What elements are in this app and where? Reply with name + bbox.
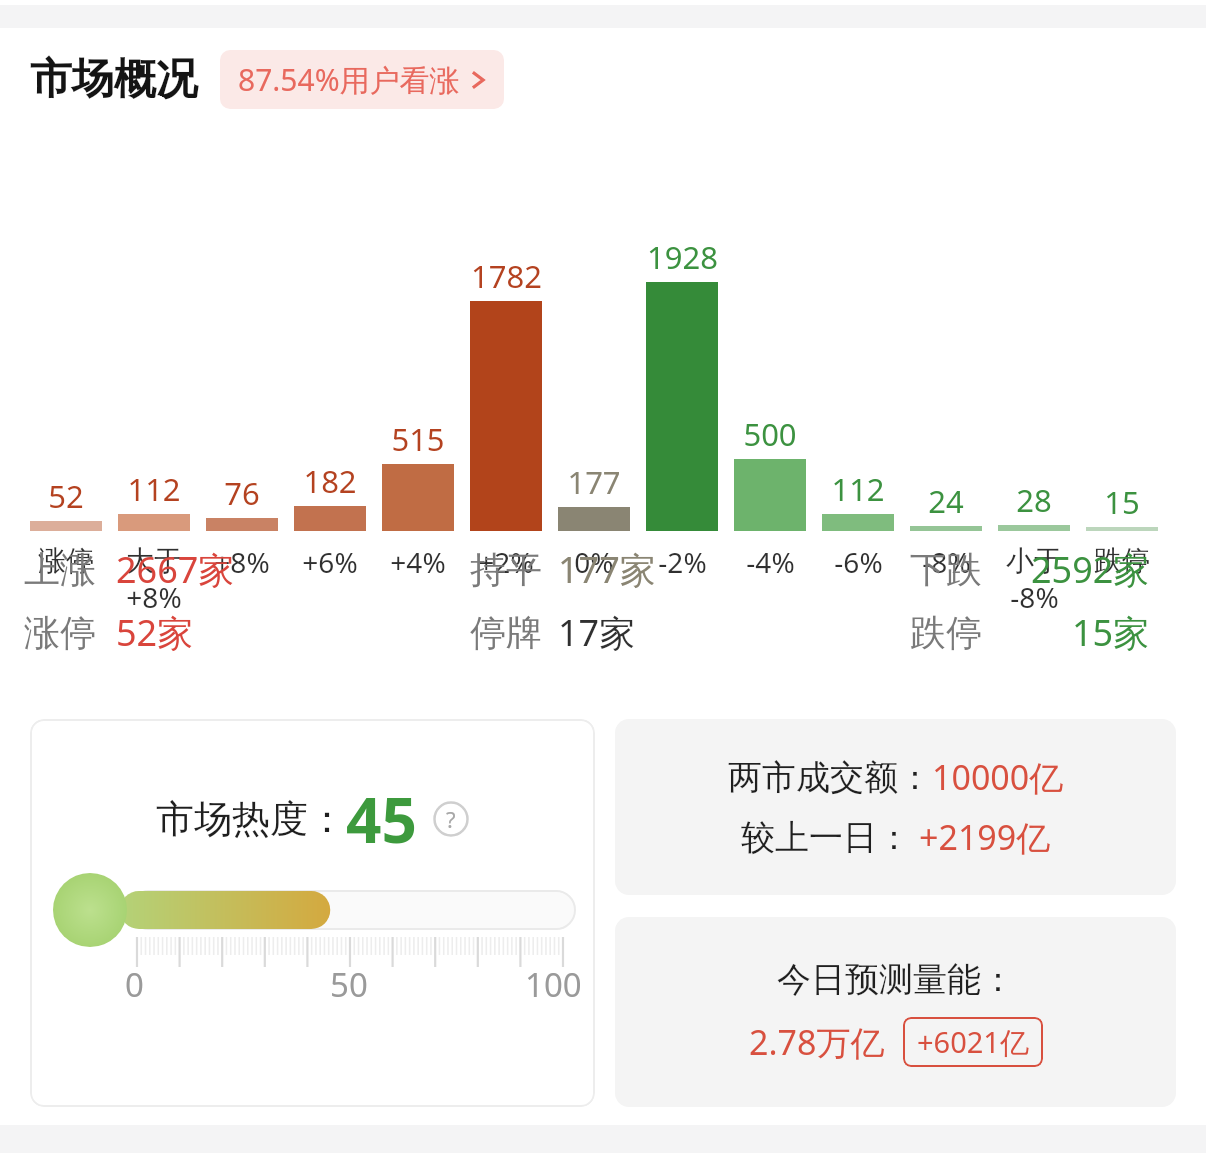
staticText: 0% (574, 543, 614, 581)
staticText: 10000亿 (932, 754, 1064, 800)
staticText: 52家 (116, 608, 194, 657)
staticText: 跌停 (1094, 543, 1150, 578)
staticText: 17家 (558, 608, 636, 657)
staticText: 大于 (126, 543, 182, 578)
staticText: -2% (658, 543, 707, 581)
staticText: +6% (302, 543, 358, 581)
staticText: -8% (922, 543, 971, 581)
button[interactable]: 两市成交额： (615, 719, 1176, 895)
staticText: +8% (126, 578, 182, 616)
staticText: +2199亿 (919, 814, 1051, 860)
staticText: 今日预测量能： (777, 958, 1015, 1001)
button[interactable]: 市场热度： (30, 719, 595, 1107)
staticText: 下跌 (910, 547, 982, 592)
staticText: 112 (127, 468, 181, 510)
staticText: 28 (1016, 479, 1052, 521)
staticText: 2592家 (1031, 545, 1150, 594)
staticText: +2% (478, 543, 534, 581)
staticText: 100 (525, 962, 582, 1007)
staticText: 市场概况 (30, 53, 198, 106)
staticText: 较上一日： (741, 816, 911, 859)
staticText: +8% (214, 543, 270, 581)
staticText: 0 (125, 962, 144, 1007)
staticText: 500 (743, 413, 797, 455)
staticText: 2667家 (116, 545, 235, 594)
staticText: -4% (746, 543, 795, 581)
staticText: 15家 (1072, 608, 1150, 657)
button[interactable]: 今日预测量能： (615, 917, 1176, 1107)
staticText: 15 (1104, 481, 1140, 523)
staticText: 持平 (470, 547, 542, 592)
staticText: 182 (303, 460, 357, 502)
staticText: 177家 (558, 545, 656, 594)
staticText: 50 (330, 962, 368, 1007)
staticText: +6021亿 (917, 1022, 1029, 1062)
staticText: 上涨 (24, 547, 96, 592)
staticText: 2.78万亿 (749, 1019, 885, 1065)
staticText: -8% (1010, 578, 1059, 616)
staticText: ? (446, 804, 456, 834)
staticText: 停牌 (470, 610, 542, 655)
staticText: 跌停 (910, 610, 982, 655)
staticText: 两市成交额： (728, 756, 932, 799)
staticText: 112 (831, 468, 885, 510)
staticText: 515 (391, 418, 445, 460)
staticText: 76 (224, 472, 260, 514)
staticText: 1928 (647, 236, 718, 278)
staticText: 小于 (1006, 543, 1062, 578)
staticText: 177 (567, 461, 621, 503)
staticText: 45 (346, 777, 417, 861)
staticText: 24 (928, 480, 964, 522)
staticText: 1782 (471, 255, 542, 297)
staticText: 52 (48, 475, 84, 517)
staticText: 87.54%用户看涨 (238, 59, 460, 100)
staticText: -6% (834, 543, 883, 581)
button[interactable]: 87.54%用户看涨 (220, 50, 504, 109)
button[interactable]: 市场热度说明 (433, 801, 469, 837)
staticText: 涨停 (38, 543, 94, 578)
staticText: +4% (390, 543, 446, 581)
staticText: 市场热度： (156, 795, 346, 843)
staticText: 涨停 (24, 610, 96, 655)
